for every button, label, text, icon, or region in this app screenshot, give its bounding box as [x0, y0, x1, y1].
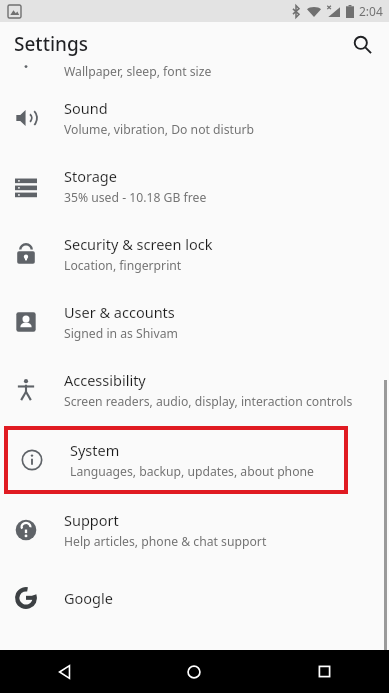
button[interactable]: Storage: [0, 152, 389, 220]
staticText: Accessibility: [64, 370, 146, 390]
staticText: Storage: [64, 166, 117, 186]
button[interactable]: Support: [0, 496, 389, 564]
staticText: Google: [64, 588, 113, 608]
staticText: 35% used - 10.18 GB free: [64, 189, 207, 206]
staticText: User & accounts: [64, 302, 175, 322]
staticText: Support: [64, 510, 119, 530]
staticText: Languages, backup, updates, about phone: [70, 463, 314, 480]
staticText: System: [70, 440, 120, 460]
button[interactable]: Google: [0, 564, 389, 632]
button[interactable]: Security & screen lock: [0, 220, 389, 288]
button[interactable]: Recent apps: [259, 650, 389, 693]
staticText: 2:04: [359, 3, 383, 19]
staticText: Volume, vibration, Do not disturb: [64, 121, 255, 138]
staticText: Settings: [14, 31, 88, 57]
staticText: Wallpaper, sleep, font size: [64, 63, 212, 80]
staticText: Signed in as Shivam: [64, 325, 178, 342]
staticText: Sound: [64, 98, 108, 118]
button[interactable]: Search: [341, 23, 383, 65]
button[interactable]: Accessibility: [0, 356, 389, 424]
button[interactable]: Back: [0, 650, 129, 693]
button[interactable]: Sound: [0, 84, 389, 152]
staticText: Screen readers, audio, display, interact…: [64, 393, 353, 410]
staticText: Security & screen lock: [64, 234, 213, 254]
button[interactable]: Home: [129, 650, 259, 693]
staticText: Help articles, phone & chat support: [64, 533, 267, 550]
button[interactable]: User & accounts: [0, 288, 389, 356]
staticText: Location, fingerprint: [64, 257, 182, 274]
button[interactable]: System: [4, 426, 348, 494]
